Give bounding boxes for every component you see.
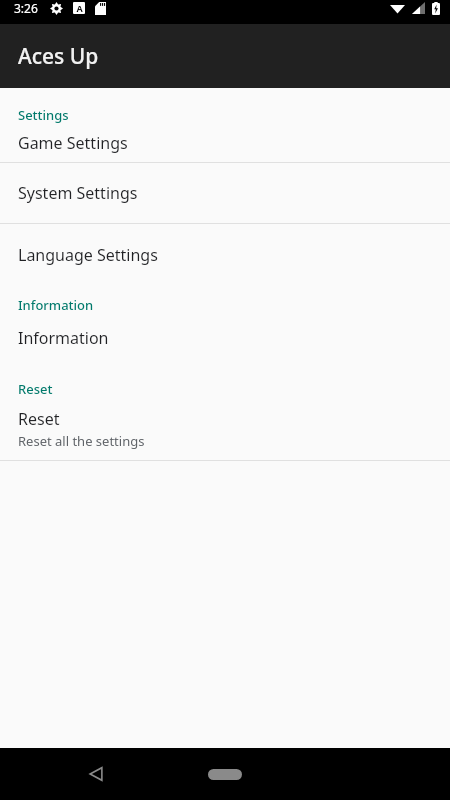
staticText: 3:26 <box>14 0 38 16</box>
staticText: Reset all the settings <box>18 432 145 450</box>
staticText: System Settings <box>18 182 138 204</box>
staticText: Aces Up <box>18 42 99 71</box>
staticText: Settings <box>18 106 69 124</box>
button[interactable]: Back <box>74 752 118 796</box>
button[interactable]: Reset <box>0 398 450 460</box>
staticText: Information <box>18 327 109 349</box>
staticText: Language Settings <box>18 244 158 266</box>
staticText: Game Settings <box>18 132 128 154</box>
staticText: Information <box>18 296 94 314</box>
button[interactable]: Home <box>197 759 253 789</box>
button[interactable]: Game Settings <box>0 124 450 162</box>
button[interactable]: System Settings <box>0 163 450 223</box>
staticText: Reset <box>18 380 53 398</box>
button[interactable]: Information <box>0 314 450 362</box>
staticText: Reset <box>18 408 60 430</box>
staticText: A <box>76 2 83 14</box>
button[interactable]: Language Settings <box>0 224 450 286</box>
